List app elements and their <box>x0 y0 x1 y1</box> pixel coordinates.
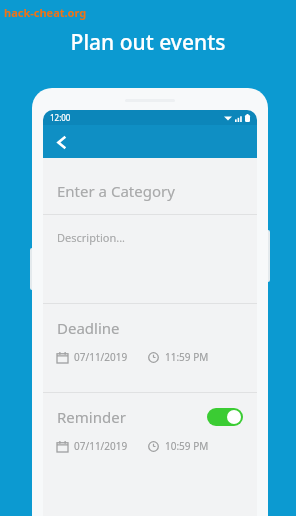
staticText: 07/11/2019 <box>74 350 128 364</box>
staticText: 07/11/2019 <box>74 439 128 453</box>
button[interactable]: Description... <box>43 215 257 303</box>
staticText: 11:59 PM <box>165 350 209 364</box>
staticText: Plan out events <box>0 28 296 57</box>
staticText: Reminder <box>57 407 126 427</box>
staticText: 10:59 PM <box>165 439 209 453</box>
staticText: hack-cheat.org <box>4 5 87 20</box>
button[interactable]: Deadline <box>43 304 257 392</box>
staticText: Enter a Category <box>57 181 175 201</box>
staticText: Description... <box>57 230 126 245</box>
staticText: Deadline <box>57 318 120 338</box>
button[interactable]: Reminder <box>43 393 257 481</box>
button[interactable]: Reminder toggle <box>207 408 243 426</box>
button[interactable]: Enter a Category <box>43 168 257 214</box>
button[interactable]: Back <box>48 129 74 155</box>
staticText: 12:00 <box>50 112 71 123</box>
